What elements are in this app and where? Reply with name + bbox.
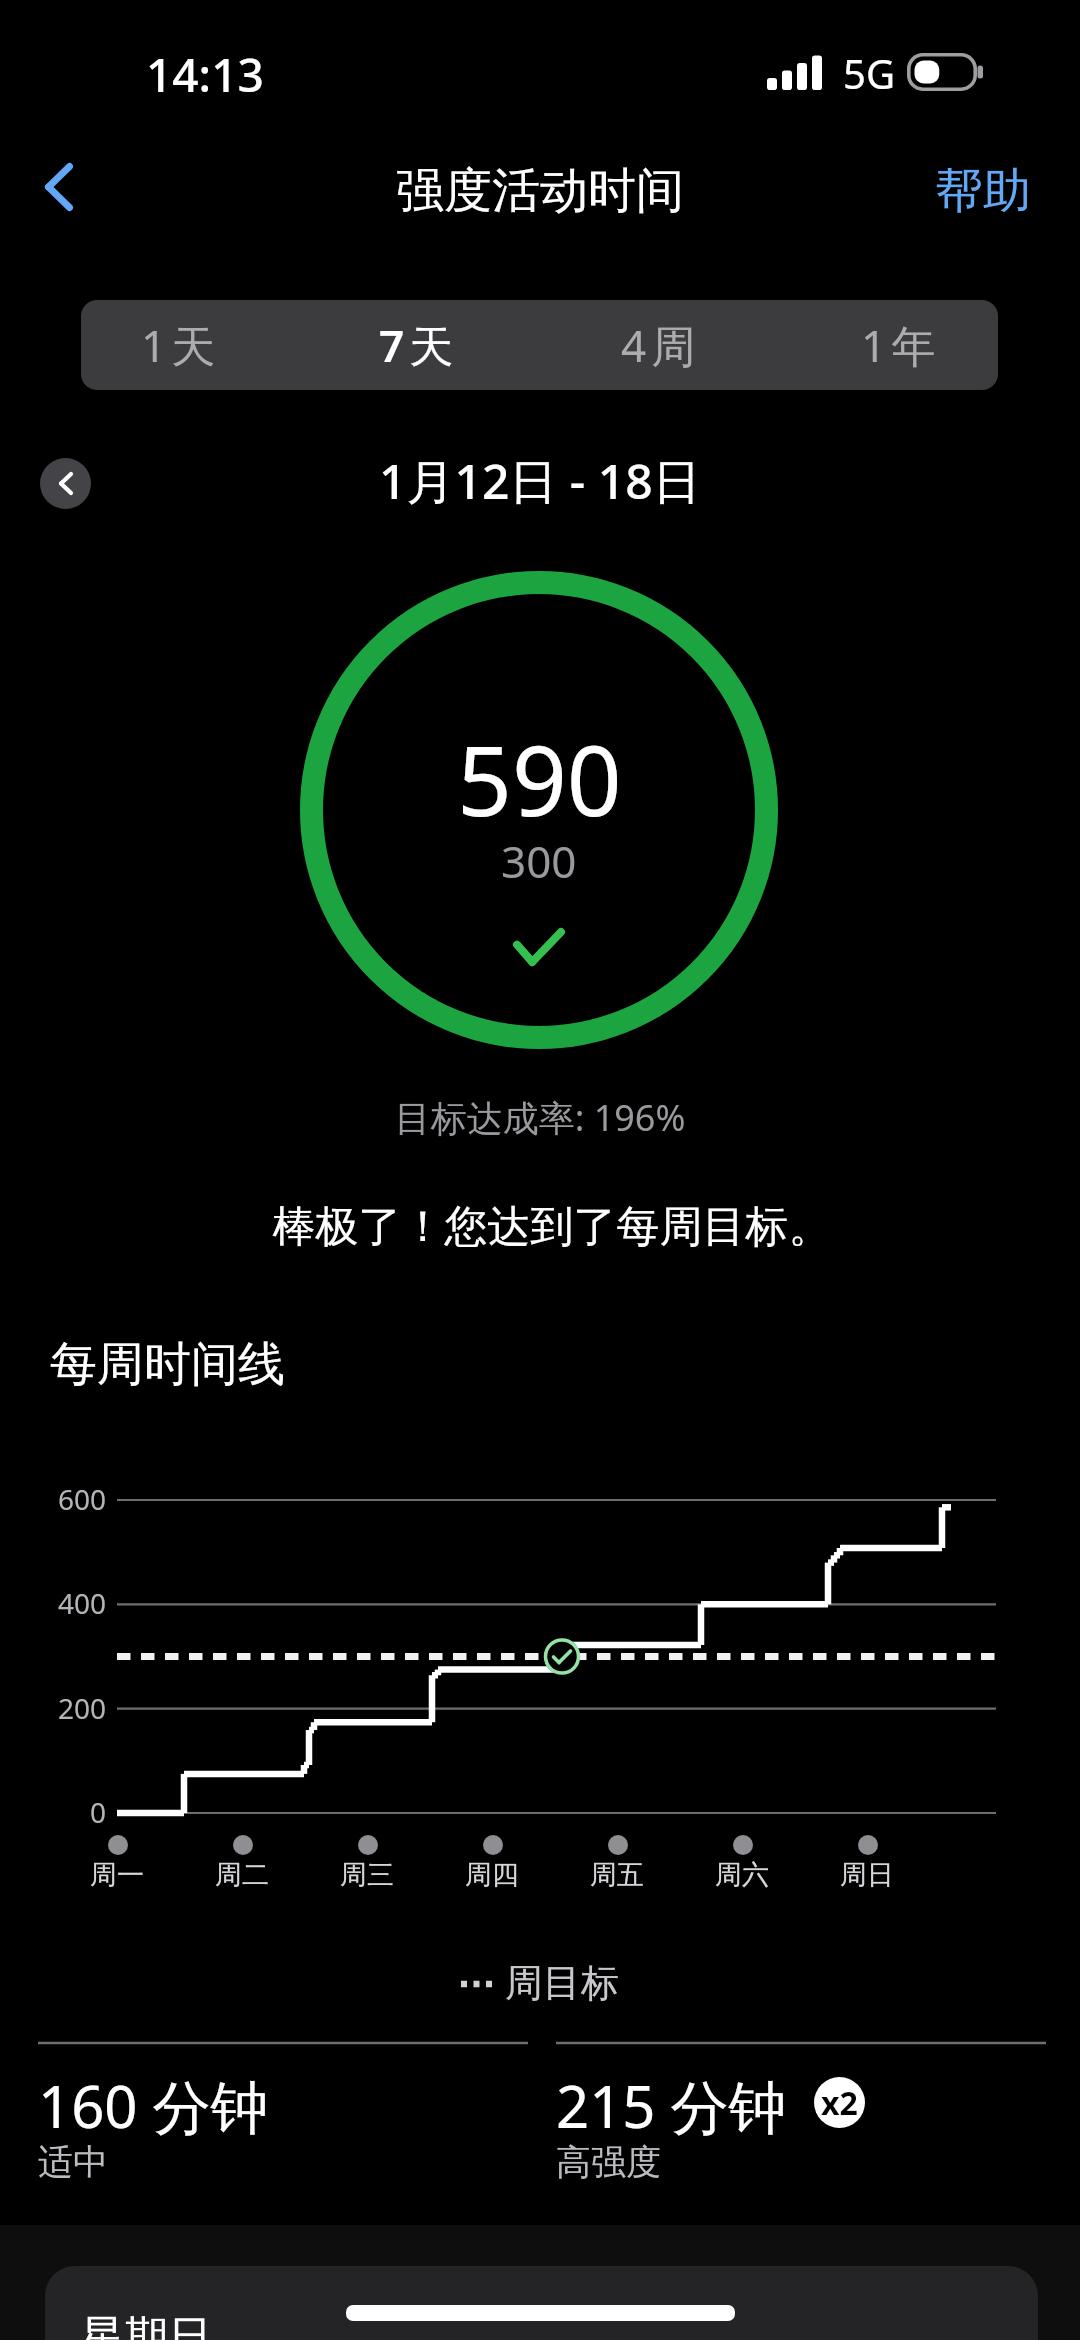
button[interactable]: Back [0, 135, 116, 247]
button[interactable]: 1天 [81, 300, 310, 390]
staticText: 周二 [192, 1858, 292, 1892]
staticText: 14:13 [146, 43, 264, 106]
staticText: 帮助 [935, 161, 1031, 221]
staticText: 4周 [621, 315, 701, 375]
staticText: 7天 [379, 315, 459, 375]
staticText: 590 [457, 713, 622, 844]
staticText: 周三 [317, 1858, 417, 1892]
staticText: 周一 [67, 1858, 167, 1892]
staticText: 600 [0, 1480, 106, 1518]
staticText: 400 [0, 1584, 106, 1622]
staticText: 高强度 [556, 2140, 661, 2184]
staticText: 周目标 [505, 1959, 619, 2007]
staticText: 1天 [141, 315, 221, 375]
staticText: 周五 [567, 1858, 667, 1892]
staticText: 5G [843, 46, 895, 100]
staticText: 每周时间线 [50, 1335, 285, 1394]
staticText: 棒极了！您达到了每周目标。 [12, 1200, 1080, 1254]
button[interactable]: 7天 [310, 300, 539, 390]
button[interactable]: 1年 [769, 300, 998, 390]
button[interactable]: Previous week [40, 458, 91, 509]
staticText: 300 [501, 831, 577, 891]
staticText: 200 [0, 1689, 106, 1727]
button[interactable]: 160 分钟 [38, 2066, 528, 2189]
staticText: 适中 [38, 2140, 108, 2184]
button[interactable]: 帮助 [893, 135, 1080, 247]
button[interactable]: 215 分钟 [556, 2066, 1046, 2189]
staticText: 160 分钟 [38, 2066, 269, 2145]
staticText: 目标达成率: 196% [0, 1093, 1080, 1142]
staticText: 1年 [861, 315, 941, 375]
staticText: 强度活动时间 [396, 161, 684, 221]
staticText: 星期日 [80, 2310, 212, 2340]
staticText: 周六 [692, 1858, 792, 1892]
staticText: 周日 [817, 1858, 917, 1892]
staticText: 0 [0, 1793, 106, 1831]
button[interactable]: 星期日 [45, 2266, 1038, 2340]
button[interactable]: 4周 [540, 300, 769, 390]
staticText: 215 分钟 [556, 2066, 787, 2145]
staticText: x2 [821, 2081, 858, 2125]
staticText: 1月12日 - 18日 [379, 448, 701, 510]
staticText: 周四 [442, 1858, 542, 1892]
